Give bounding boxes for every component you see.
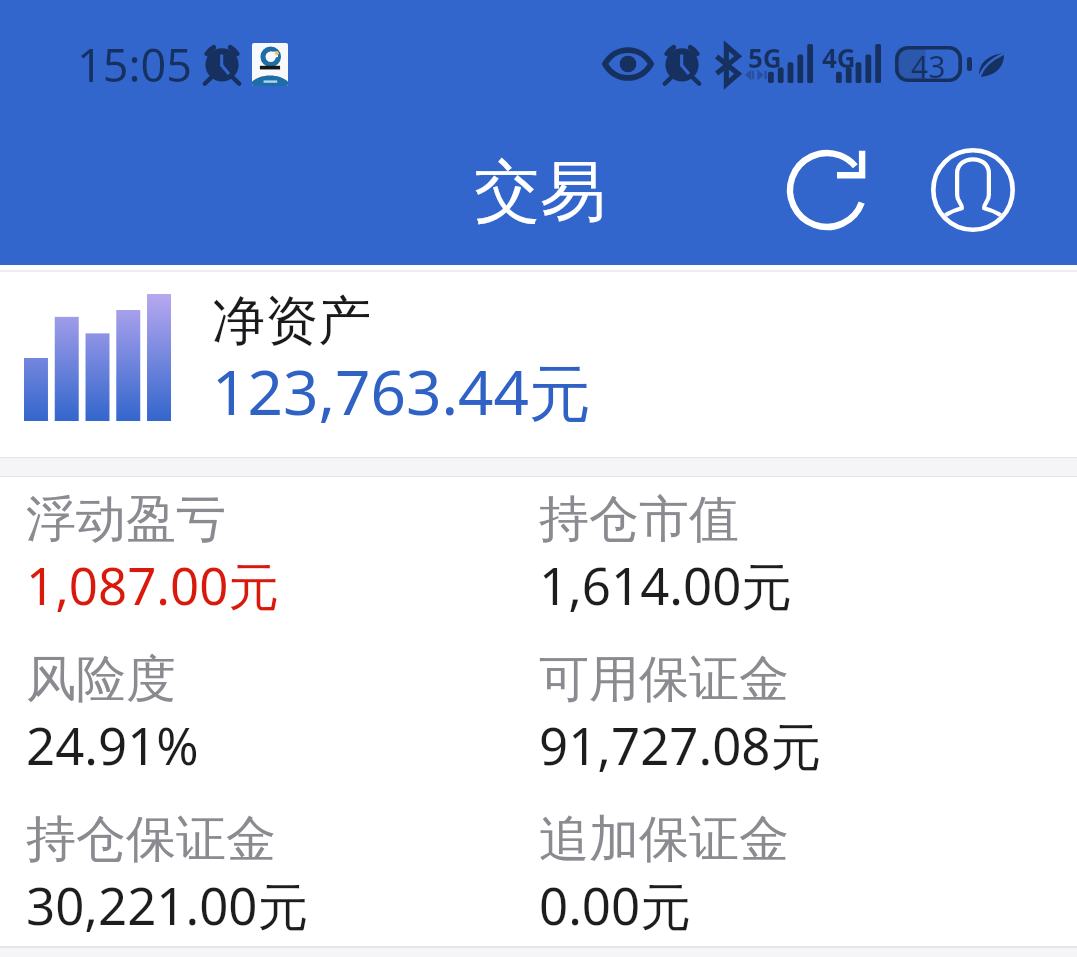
button[interactable]: Refresh: [779, 142, 875, 238]
staticText: 5G: [748, 40, 782, 75]
staticText: 交易: [474, 150, 606, 233]
staticText: 15:05: [77, 34, 193, 95]
staticText: 1,087.00元: [26, 550, 280, 620]
staticText: 4G: [822, 40, 856, 75]
button[interactable]: 追加保证金: [513, 797, 1077, 946]
staticText: 91,727.08元: [539, 710, 822, 780]
button[interactable]: 可用保证金: [513, 637, 1077, 797]
staticText: 追加保证金: [539, 808, 789, 871]
button[interactable]: 持仓保证金: [0, 797, 513, 946]
staticText: 30,221.00元: [26, 870, 309, 940]
button[interactable]: 风险度: [0, 637, 513, 797]
button[interactable]: 持仓市值: [513, 477, 1077, 637]
staticText: 可用保证金: [539, 648, 789, 711]
staticText: 1,614.00元: [539, 550, 793, 620]
button[interactable]: 净资产: [0, 272, 1077, 457]
staticText: 24.91%: [26, 710, 199, 779]
button[interactable]: Account: [925, 142, 1021, 238]
staticText: 风险度: [26, 648, 176, 711]
staticText: 净资产: [212, 288, 371, 355]
button[interactable]: 浮动盈亏: [0, 477, 513, 637]
staticText: 123,763.44元: [212, 349, 591, 434]
staticText: 持仓保证金: [26, 808, 276, 871]
staticText: 43: [911, 46, 946, 82]
staticText: 0.00元: [539, 870, 692, 940]
staticText: 持仓市值: [539, 488, 739, 551]
staticText: 浮动盈亏: [26, 488, 226, 551]
